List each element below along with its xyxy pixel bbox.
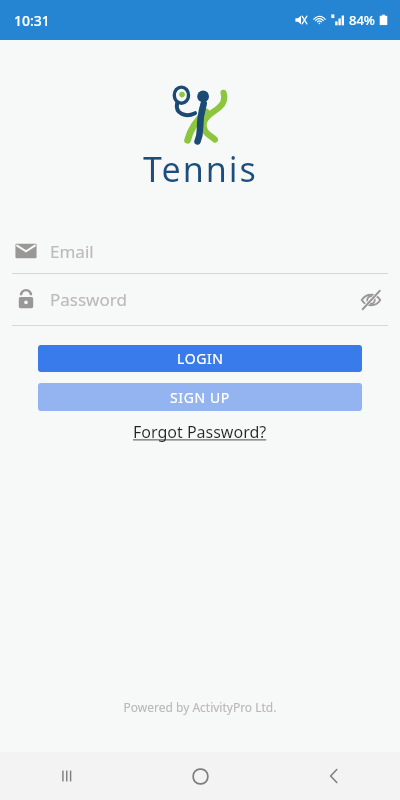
button[interactable]: Forgot Password? (127, 419, 273, 445)
staticText: Forgot Password? (133, 421, 267, 443)
button[interactable]: Recent apps (0, 752, 134, 800)
button[interactable]: Home (134, 752, 267, 800)
staticText: Password (50, 288, 356, 311)
button[interactable]: SIGN UP (38, 383, 362, 411)
button[interactable]: Email (0, 229, 400, 273)
staticText: 84% (349, 11, 375, 29)
button[interactable]: Show password (356, 285, 386, 315)
button[interactable]: Back (267, 752, 400, 800)
staticText: Tennis (143, 146, 258, 192)
button[interactable]: Password (0, 274, 400, 325)
staticText: Email (50, 240, 94, 263)
staticText: LOGIN (177, 349, 224, 368)
staticText: Powered by ActivityPro Ltd. (0, 699, 400, 715)
button[interactable]: LOGIN (38, 345, 362, 372)
staticText: SIGN UP (170, 388, 230, 407)
staticText: 10:31 (14, 11, 50, 30)
